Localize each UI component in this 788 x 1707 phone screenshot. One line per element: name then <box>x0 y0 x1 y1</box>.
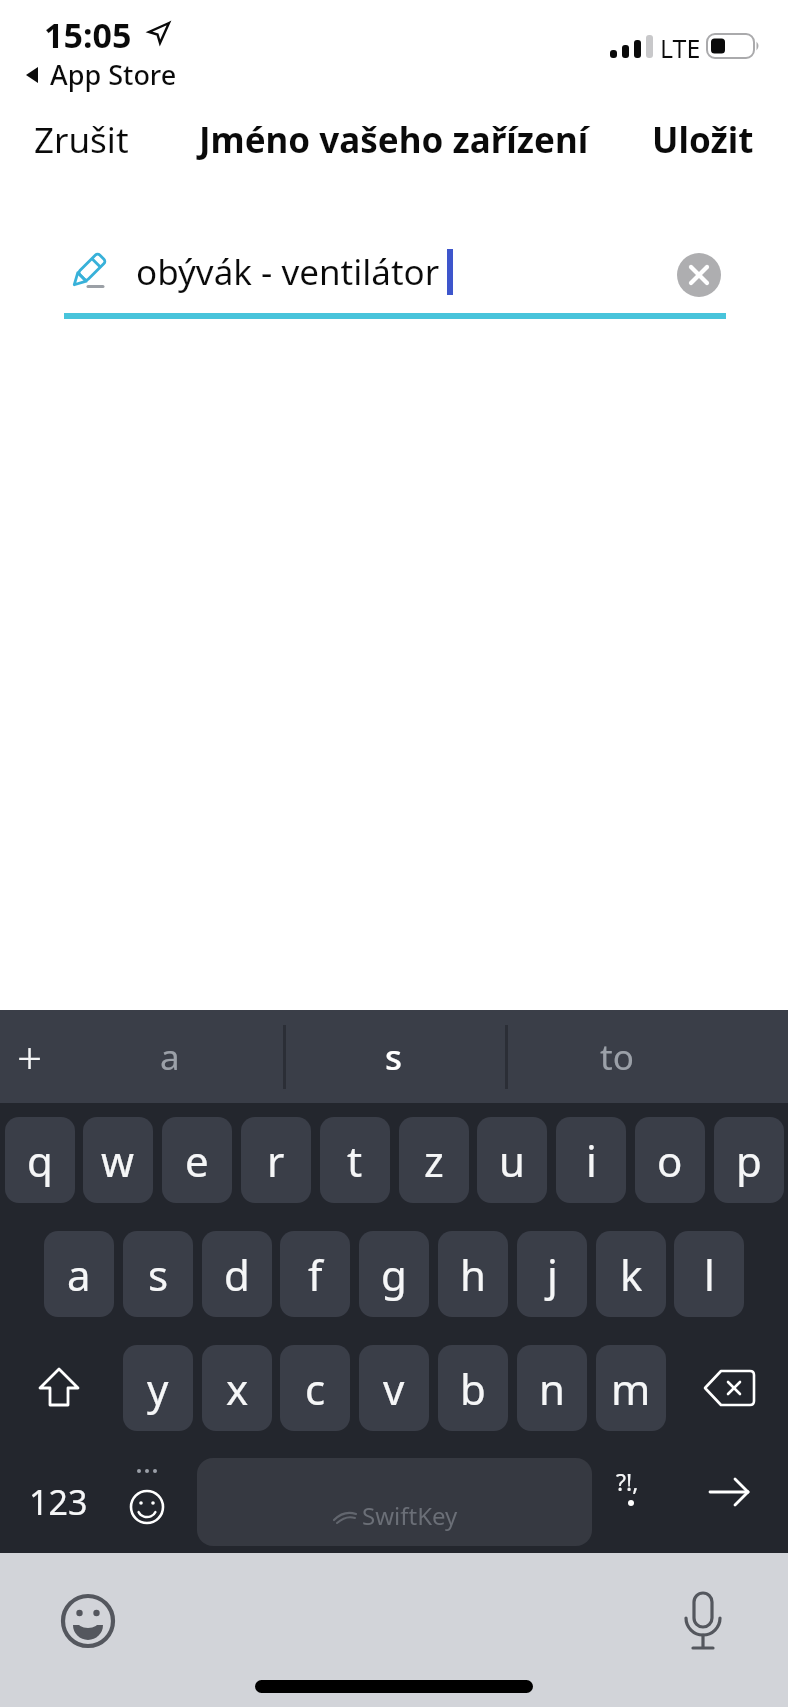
staticText: e <box>185 1132 209 1189</box>
button[interactable]: q <box>5 1117 75 1203</box>
staticText: LTE <box>660 31 701 65</box>
staticText: c <box>305 1360 326 1417</box>
staticText: b <box>460 1360 486 1417</box>
staticText: p <box>736 1132 762 1189</box>
staticText: App Store <box>50 56 177 93</box>
button[interactable] <box>704 1473 754 1511</box>
staticText: r <box>267 1132 285 1189</box>
staticText: u <box>499 1132 525 1189</box>
button[interactable]: to <box>517 1010 717 1103</box>
button[interactable]: a <box>70 1010 270 1103</box>
staticText: q <box>27 1132 53 1189</box>
button[interactable] <box>672 1587 734 1663</box>
staticText: w <box>101 1132 135 1189</box>
staticText: h <box>460 1246 486 1303</box>
button[interactable] <box>117 1459 177 1545</box>
button[interactable]: z <box>399 1117 469 1203</box>
button[interactable]: Zrušit <box>34 116 129 164</box>
staticText: Uložit <box>652 116 754 164</box>
button[interactable]: o <box>635 1117 705 1203</box>
button[interactable]: a <box>44 1231 114 1317</box>
button[interactable]: f <box>280 1231 350 1317</box>
staticText: j <box>547 1246 558 1303</box>
button[interactable]: j <box>517 1231 587 1317</box>
staticText: f <box>308 1246 323 1303</box>
staticText: a <box>67 1246 91 1303</box>
staticText: n <box>539 1360 565 1417</box>
button[interactable]: w <box>83 1117 153 1203</box>
staticText: i <box>586 1132 597 1189</box>
staticText: t <box>347 1132 363 1189</box>
staticText: obývák - ventilátor <box>136 248 440 296</box>
button[interactable] <box>58 1591 118 1651</box>
staticText: ?!, <box>616 1466 639 1497</box>
staticText: d <box>224 1246 250 1303</box>
button[interactable] <box>600 1459 662 1545</box>
staticText: m <box>611 1360 651 1417</box>
button[interactable]: g <box>359 1231 429 1317</box>
button[interactable] <box>25 1354 93 1422</box>
staticText: SwiftKey <box>362 1499 458 1532</box>
button[interactable]: y <box>123 1345 193 1431</box>
staticText: g <box>381 1246 407 1303</box>
staticText: l <box>704 1246 715 1303</box>
button[interactable]: r <box>241 1117 311 1203</box>
staticText: Zrušit <box>34 116 129 164</box>
button[interactable]: p <box>714 1117 784 1203</box>
button[interactable]: n <box>517 1345 587 1431</box>
button[interactable]: c <box>280 1345 350 1431</box>
staticText: s <box>148 1246 169 1303</box>
button[interactable]: t <box>320 1117 390 1203</box>
staticText: k <box>620 1246 643 1303</box>
button[interactable]: s <box>123 1231 193 1317</box>
button[interactable]: l <box>674 1231 744 1317</box>
staticText: y <box>147 1360 169 1417</box>
button[interactable]: Uložit <box>652 116 754 164</box>
button[interactable]: u <box>477 1117 547 1203</box>
staticText: 15:05 <box>44 12 132 58</box>
button[interactable]: 123 <box>18 1459 98 1545</box>
button[interactable]: b <box>438 1345 508 1431</box>
staticText: 123 <box>29 1479 88 1525</box>
button[interactable]: h <box>438 1231 508 1317</box>
button[interactable]: m <box>596 1345 666 1431</box>
staticText: v <box>383 1360 405 1417</box>
button[interactable]: k <box>596 1231 666 1317</box>
button[interactable]: SwiftKey <box>197 1458 592 1546</box>
staticText: z <box>424 1132 444 1189</box>
staticText: x <box>226 1360 249 1417</box>
button[interactable] <box>677 253 721 297</box>
staticText: Jméno vašeho zařízení <box>199 116 589 164</box>
button[interactable]: x <box>202 1345 272 1431</box>
button[interactable]: e <box>162 1117 232 1203</box>
staticText: s <box>385 1033 403 1081</box>
button[interactable] <box>695 1354 763 1422</box>
button[interactable]: i <box>556 1117 626 1203</box>
button[interactable]: s <box>294 1010 494 1103</box>
staticText: a <box>160 1033 180 1081</box>
staticText: + <box>17 1027 43 1087</box>
button[interactable]: App Store <box>24 56 177 93</box>
staticText: to <box>600 1033 634 1081</box>
button[interactable]: v <box>359 1345 429 1431</box>
staticText: o <box>657 1132 683 1189</box>
button[interactable]: d <box>202 1231 272 1317</box>
button[interactable]: + <box>4 1010 56 1103</box>
